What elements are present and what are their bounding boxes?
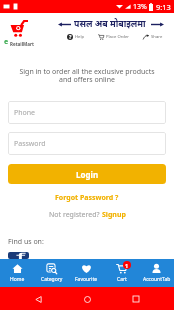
button[interactable]: Phone bbox=[8, 101, 166, 124]
staticText: Category bbox=[41, 276, 63, 283]
button[interactable]: Favourite bbox=[69, 259, 104, 287]
staticText: Cart bbox=[117, 276, 127, 283]
staticText: Favourite bbox=[75, 276, 98, 283]
staticText: 1 bbox=[125, 262, 129, 269]
button[interactable]: Home bbox=[76, 288, 98, 310]
staticText: Place Order bbox=[106, 34, 130, 40]
staticText: Sign in to order all the exclusive produ… bbox=[0, 67, 174, 84]
staticText: 9:13 bbox=[156, 2, 171, 12]
button[interactable]: Back bbox=[27, 288, 49, 310]
staticText: Find us on: bbox=[8, 237, 44, 247]
staticText: RetailMart bbox=[10, 41, 34, 47]
staticText: Help bbox=[75, 34, 85, 40]
button[interactable]: Forgot Password ? bbox=[54, 192, 120, 204]
button[interactable]: 1 bbox=[104, 259, 139, 287]
staticText: 13% bbox=[133, 2, 147, 12]
button[interactable]: Home bbox=[0, 259, 34, 287]
staticText: पसल अब मोबाइलमा bbox=[74, 18, 146, 30]
button[interactable]: AccountTab bbox=[139, 259, 174, 287]
staticText: Login bbox=[76, 169, 99, 180]
button[interactable]: Recents bbox=[125, 288, 147, 310]
button[interactable]: Login bbox=[8, 164, 166, 184]
button[interactable]: Signup bbox=[102, 210, 126, 220]
button[interactable]: ? bbox=[66, 32, 86, 42]
button[interactable]: Facebook bbox=[8, 252, 29, 259]
staticText: ? bbox=[69, 34, 72, 40]
button[interactable]: Place Order bbox=[97, 32, 131, 42]
staticText: Share bbox=[151, 34, 163, 40]
staticText: Not registered? bbox=[49, 210, 102, 220]
staticText: e bbox=[4, 37, 9, 47]
button[interactable]: Password bbox=[8, 132, 166, 155]
button[interactable]: Category bbox=[34, 259, 69, 287]
staticText: Home bbox=[10, 276, 25, 283]
staticText: AccountTab bbox=[143, 276, 171, 283]
button[interactable]: Share bbox=[142, 32, 164, 42]
staticText: Phone bbox=[14, 108, 36, 118]
staticText: Password bbox=[14, 139, 46, 149]
